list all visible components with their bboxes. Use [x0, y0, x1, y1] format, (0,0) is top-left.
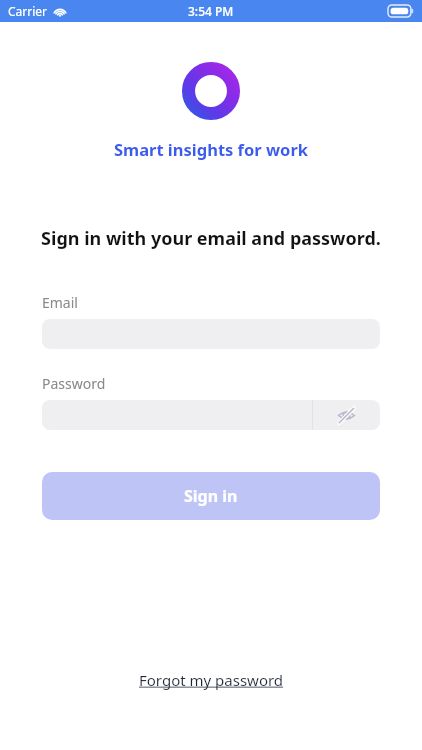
staticText: Forgot my password — [139, 670, 284, 690]
staticText: Email — [42, 293, 78, 312]
button[interactable]: Show password — [313, 400, 380, 430]
button[interactable]: Sign in — [42, 472, 380, 520]
staticText: Smart insights for work — [0, 138, 422, 160]
staticText: 3:54 PM — [188, 3, 234, 19]
staticText: Sign in with your email and password. — [0, 226, 422, 251]
staticText: Sign in — [184, 485, 238, 507]
staticText: Password — [42, 374, 106, 393]
button[interactable]: Forgot my password — [129, 666, 294, 694]
staticText: Carrier — [8, 3, 48, 19]
